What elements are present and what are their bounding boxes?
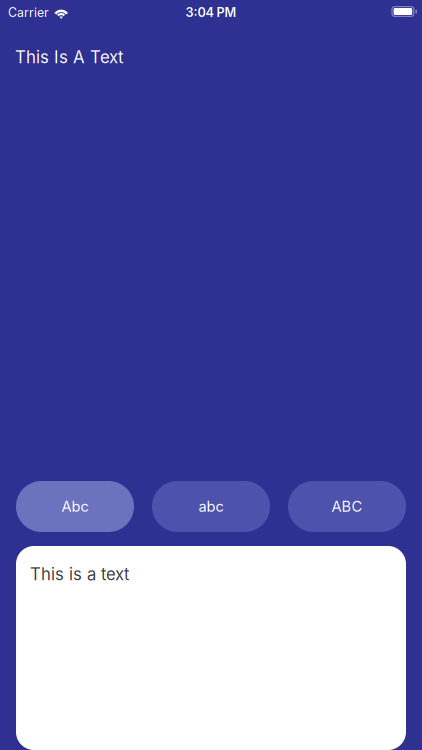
staticText: abc (198, 498, 223, 515)
staticText: This Is A Text (15, 47, 123, 67)
staticText: Carrier (8, 5, 49, 20)
staticText: Abc (61, 498, 88, 515)
staticText: ABC (331, 498, 362, 515)
button[interactable]: Abc (16, 481, 134, 532)
staticText: This is a text (30, 564, 129, 584)
staticText: 3:04 PM (185, 5, 236, 20)
button[interactable]: abc (152, 481, 270, 532)
button[interactable]: ABC (288, 481, 406, 532)
